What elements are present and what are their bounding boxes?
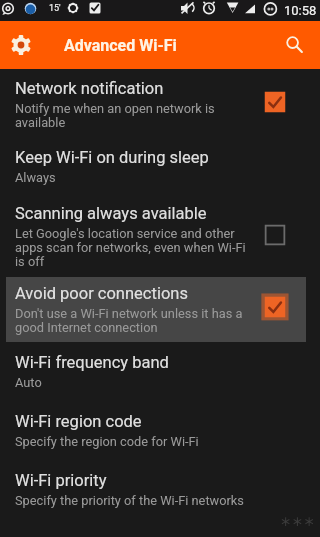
staticText: Don't use a Wi-Fi network unless it has … <box>15 306 251 335</box>
staticText: Auto <box>15 375 42 390</box>
button[interactable]: Settings <box>0 21 42 69</box>
staticText: 10:58 <box>284 3 317 18</box>
staticText: Specify the priority of the Wi-Fi networ… <box>15 493 244 508</box>
button[interactable]: Scanning always available <box>0 194 320 274</box>
button[interactable]: Scanning always available <box>261 221 289 249</box>
staticText: Specify the region code for Wi-Fi <box>15 434 199 449</box>
button[interactable]: Wi-Fi frequency band <box>0 343 320 402</box>
button[interactable]: Network notification <box>0 69 320 138</box>
button[interactable]: Keep Wi-Fi on during sleep <box>0 138 320 194</box>
staticText: Network notification <box>15 79 164 98</box>
staticText: Avoid poor connections <box>15 284 188 303</box>
staticText: Wi-Fi region code <box>15 412 142 431</box>
staticText: ∗∗∗ <box>280 513 316 529</box>
staticText: 15' <box>49 3 61 14</box>
staticText: Advanced Wi-Fi <box>64 36 177 55</box>
staticText: Notify me when an open network is availa… <box>15 101 251 130</box>
button[interactable]: Avoid poor connections <box>261 293 289 321</box>
button[interactable]: Avoid poor connections <box>6 277 306 342</box>
button[interactable]: Wi-Fi region code <box>0 402 320 461</box>
staticText: Let Google's location service and other … <box>15 226 251 269</box>
staticText: Scanning always available <box>15 204 207 223</box>
staticText: Wi-Fi priority <box>15 471 107 490</box>
button[interactable]: Network notification <box>261 88 289 116</box>
staticText: Always <box>15 170 56 185</box>
button[interactable]: Wi-Fi priority <box>0 461 320 521</box>
staticText: Keep Wi-Fi on during sleep <box>15 148 209 167</box>
button[interactable]: Search <box>272 21 320 69</box>
staticText: Wi-Fi frequency band <box>15 353 169 372</box>
